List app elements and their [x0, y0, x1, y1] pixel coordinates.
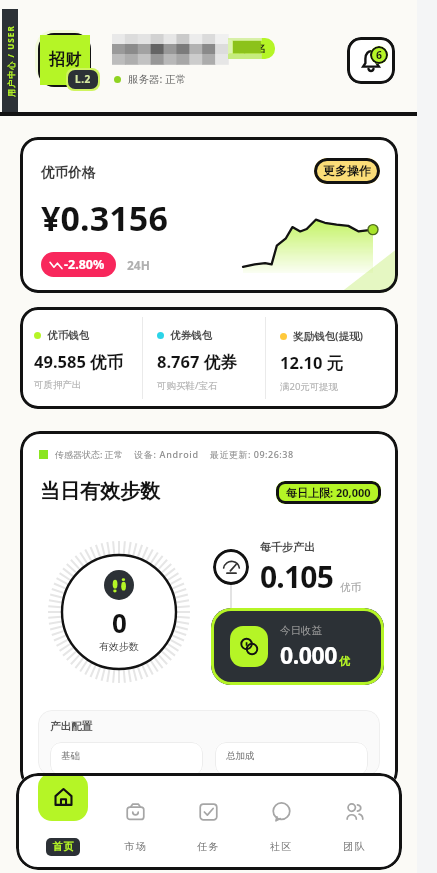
staticText: 24H — [127, 257, 150, 273]
staticText: 优币钱包 — [47, 329, 89, 342]
staticText: 优券钱包 — [170, 329, 212, 342]
button[interactable]: 优币钱包 — [20, 307, 142, 409]
staticText: 基础 — [61, 750, 80, 762]
staticText: 6 — [376, 48, 383, 62]
button[interactable]: 第1名 — [228, 38, 275, 59]
staticText: 每日上限: 20,000 — [286, 485, 371, 500]
button[interactable]: Notifications — [347, 37, 395, 84]
button[interactable]: 优券钱包 — [143, 307, 265, 409]
staticText: 服务器: 正常 — [128, 72, 187, 86]
staticText: 奖励钱包(提现) — [293, 329, 364, 343]
staticText: 可购买鞋/宝石 — [157, 379, 218, 392]
button[interactable]: 今日收益 — [211, 608, 384, 685]
staticText: 49.585 优币 — [34, 350, 124, 373]
staticText: 更多操作 — [323, 163, 371, 178]
staticText: 市场 — [124, 840, 148, 853]
staticText: 首页 — [52, 840, 74, 853]
staticText: 最近更新: 09:26:38 — [210, 448, 294, 460]
staticText: ¥0.3156 — [41, 195, 168, 241]
button[interactable]: 任务 — [172, 773, 245, 870]
staticText: 8.767 优券 — [157, 350, 237, 373]
staticText: 优 — [339, 654, 350, 668]
staticText: 当日有效步数 — [40, 479, 160, 504]
staticText: -2.80% — [64, 256, 105, 273]
staticText: 今日收益 — [280, 624, 322, 637]
staticText: 可质押产出 — [34, 379, 82, 391]
staticText: 有效步数 — [99, 640, 139, 653]
staticText: 用户中心 / USER — [5, 25, 16, 97]
staticText: 优币 — [340, 581, 361, 594]
staticText: 团队 — [343, 840, 367, 853]
button[interactable]: 团队 — [318, 773, 391, 870]
staticText: 传感器状态: 正常 — [55, 448, 123, 460]
button[interactable]: 市场 — [99, 773, 172, 870]
button[interactable]: 奖励钱包(提现) — [266, 307, 398, 409]
staticText: 总加成 — [226, 750, 255, 762]
button[interactable]: 更多操作 — [314, 158, 380, 184]
staticText: 0 — [112, 605, 127, 640]
staticText: 满20元可提现 — [280, 380, 339, 393]
staticText: 12.10 元 — [280, 351, 344, 374]
staticText: 产出配置 — [50, 720, 92, 733]
button[interactable]: 首页 — [27, 773, 99, 870]
button[interactable]: 社区 — [245, 773, 318, 870]
staticText: 任务 — [197, 840, 221, 853]
staticText: 社区 — [270, 840, 294, 853]
staticText: 每千步产出 — [260, 540, 315, 554]
staticText: 优币价格 — [41, 164, 95, 181]
staticText: 招财 — [49, 50, 81, 70]
staticText: 设备: Android — [134, 448, 199, 460]
staticText: 0.105 — [260, 556, 334, 597]
staticText: 0.000 — [280, 639, 338, 670]
button[interactable]: 每日上限: 20,000 — [276, 481, 381, 504]
staticText: L.2 — [75, 72, 91, 86]
staticText: 第1名 — [239, 41, 267, 55]
